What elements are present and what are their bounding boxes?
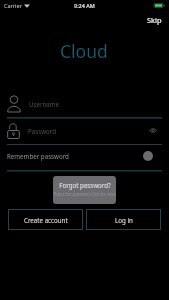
button[interactable]: Forgot password? xyxy=(53,176,116,204)
staticText: Cloud xyxy=(60,39,108,63)
staticText: Press for password (to be reset) xyxy=(53,191,116,197)
button[interactable]: Password xyxy=(7,122,162,139)
staticText: Log in xyxy=(115,216,133,224)
staticText: Remember password xyxy=(7,152,69,160)
staticText: Create account xyxy=(24,216,68,224)
staticText: Forgot password? xyxy=(59,181,111,189)
button[interactable]: Show password xyxy=(146,125,162,136)
staticText: 9:24 AM xyxy=(74,2,95,9)
button[interactable]: Username xyxy=(7,93,162,115)
button[interactable]: Create account xyxy=(8,209,83,230)
staticText: Username xyxy=(29,100,60,108)
button[interactable]: Log in xyxy=(86,209,161,230)
staticText: Carrier xyxy=(4,2,22,9)
staticText: Skip xyxy=(147,15,162,25)
button[interactable]: Remember password xyxy=(7,148,153,164)
staticText: Password xyxy=(28,127,56,135)
button[interactable]: Skip xyxy=(145,13,164,27)
